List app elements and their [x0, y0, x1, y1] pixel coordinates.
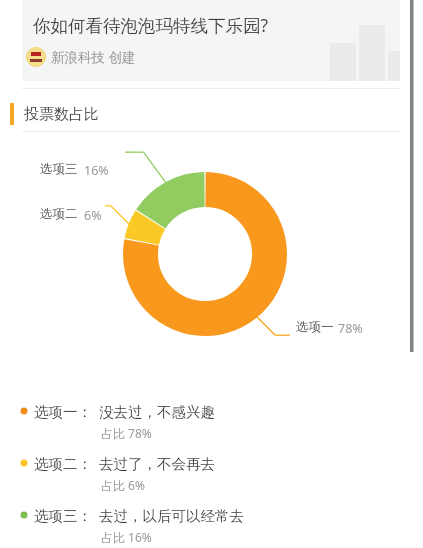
button[interactable]: Poll results chart	[0, 0, 423, 548]
